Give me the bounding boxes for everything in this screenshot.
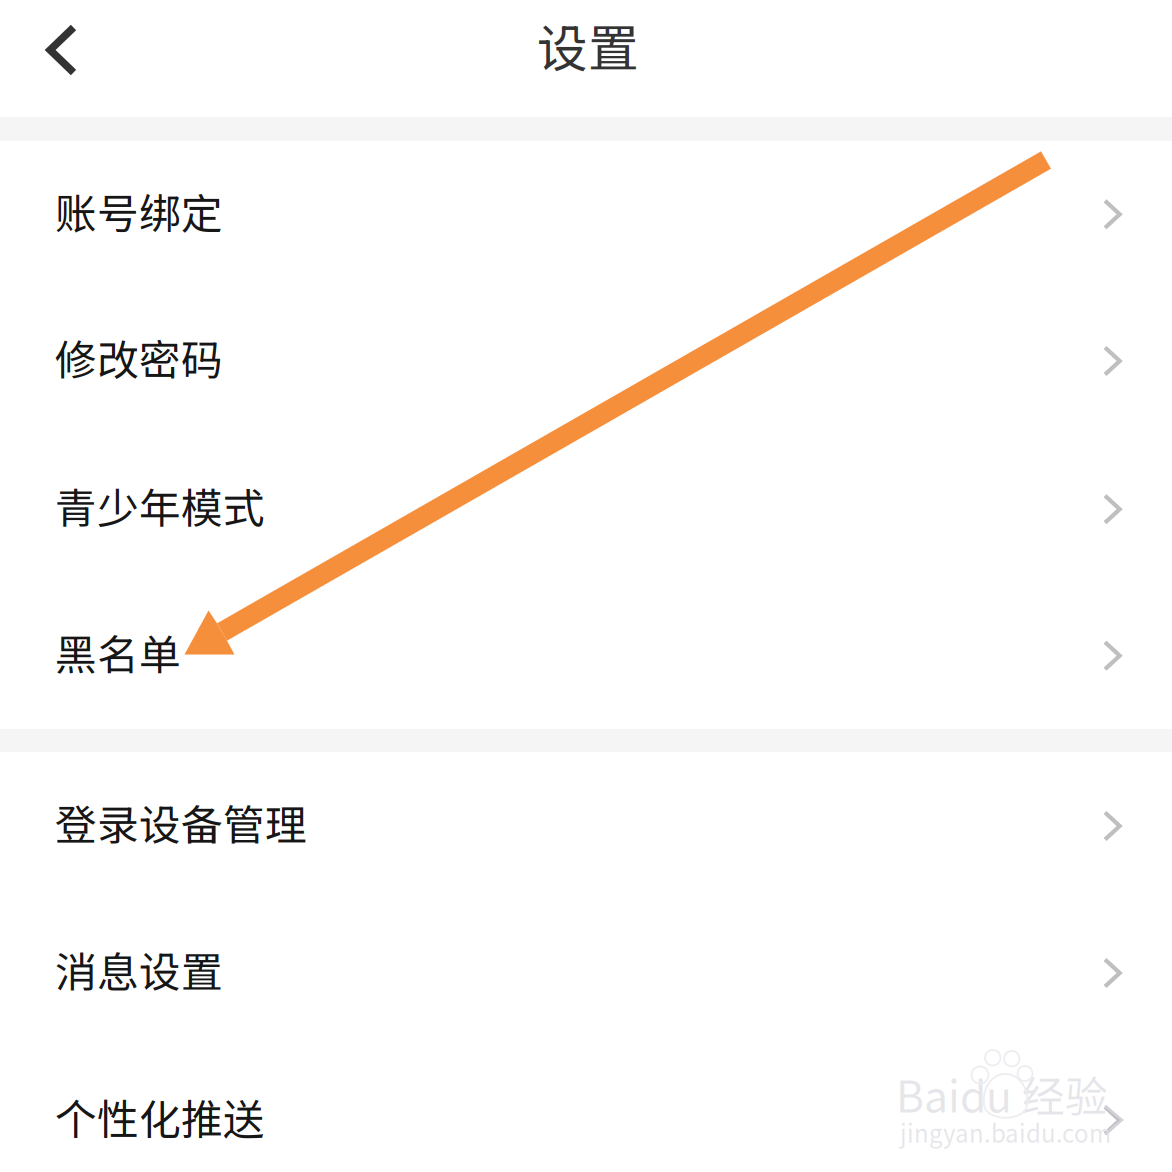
button[interactable]: 青少年模式 [0,435,1172,582]
staticText: 消息设置 [55,939,223,1000]
staticText: Baidu 经验 [896,1063,1108,1125]
staticText: 修改密码 [55,327,223,388]
button[interactable]: 修改密码 [0,288,1172,435]
button[interactable]: 消息设置 [0,899,1172,1046]
staticText: 黑名单 [55,622,181,682]
staticText: 青少年模式 [55,475,265,536]
staticText: jingyan.baidu.com [900,1115,1111,1150]
button[interactable]: 个性化推送 [0,1046,1172,1172]
button[interactable]: 账号绑定 [0,141,1172,288]
staticText: 登录设备管理 [55,792,307,853]
staticText: 账号绑定 [55,180,223,241]
button[interactable]: 登录设备管理 [0,752,1172,899]
staticText: 设置 [537,8,639,82]
button[interactable]: 黑名单 [0,582,1172,729]
button[interactable]: Back [0,0,123,100]
staticText: 个性化推送 [55,1086,265,1147]
